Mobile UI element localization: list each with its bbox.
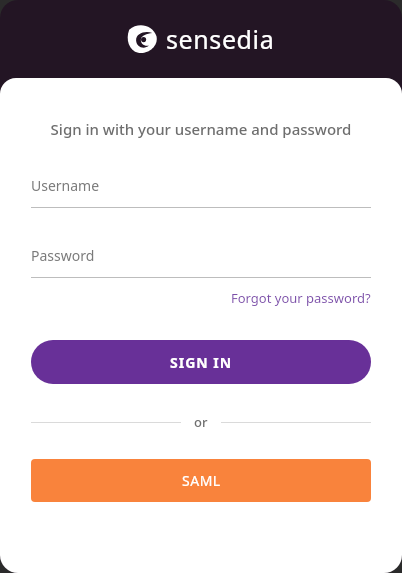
button[interactable]: Password — [31, 246, 371, 278]
staticText: Sign in with your username and password — [31, 119, 371, 139]
staticText: Forgot your password? — [231, 289, 371, 307]
staticText: or — [194, 413, 208, 431]
button[interactable]: Username — [31, 176, 371, 208]
button[interactable]: SIGN IN — [31, 340, 371, 384]
staticText: SAML — [182, 471, 221, 490]
other: Sensedia logo — [128, 24, 158, 54]
staticText: SIGN IN — [170, 353, 233, 372]
button[interactable]: Forgot your password? — [231, 286, 371, 310]
staticText: sensedia — [166, 22, 275, 56]
staticText: Password — [31, 246, 95, 265]
button[interactable]: SAML — [31, 459, 371, 502]
staticText: Username — [31, 176, 100, 195]
